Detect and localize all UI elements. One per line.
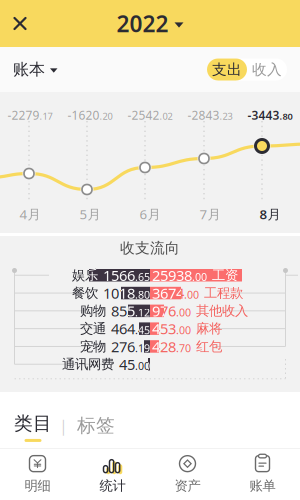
staticText: 1018 [103,283,135,303]
staticText: 支出 [212,60,242,78]
staticText: 宠物 [80,338,106,355]
staticText: .00 [192,270,207,284]
staticText: 428 [152,337,176,356]
staticText: .80 [135,287,150,302]
staticText: .00 [176,305,191,319]
staticText: 3674 [152,283,184,303]
staticText: -1620 [67,107,99,123]
staticText: .00 [184,287,199,302]
staticText: .19 [135,341,150,355]
staticText: 276 [111,337,135,356]
staticText: 类目 [14,412,52,435]
staticText: 855 [111,301,135,321]
staticText: 464 [111,319,135,338]
staticText: 交通 [80,320,106,337]
staticText: -2542 [127,107,159,123]
staticText: .00 [184,287,199,302]
button[interactable]: 标签 [68,415,124,438]
staticText: 其他收入 [196,303,248,319]
staticText: 2022 [116,8,168,38]
staticText: .00 [176,323,191,337]
staticText: .17 [39,110,52,122]
staticText: 收支流向 [120,239,180,257]
staticText: .12 [135,305,150,319]
button[interactable]: 明细 [0,455,75,494]
staticText: 4月 [19,205,40,223]
staticText: -3443 [247,107,279,123]
staticText: 25938 [152,265,192,285]
staticText: 餐饮 [72,285,98,301]
button[interactable]: 支出 [207,58,247,80]
staticText: .70 [176,341,191,355]
button[interactable]: 账本 [0,51,70,88]
staticText: 276 [111,337,135,356]
staticText: 3674 [152,283,184,303]
staticText: 工资 [212,267,238,283]
staticText: 45 [119,354,135,374]
staticText: 娱乐 [72,267,98,283]
staticText: 购物 [80,303,106,319]
staticText: 通讯网费 [62,356,114,372]
staticText: 工资 [212,267,238,283]
staticText: 8月 [259,205,280,223]
staticText: 25938 [152,265,192,285]
staticText: 5月 [79,205,100,223]
staticText: 收入 [252,60,282,78]
staticText: .80 [135,287,150,302]
staticText: 428 [152,337,176,356]
button[interactable]: 统计 [75,455,150,494]
staticText: 976 [152,301,176,321]
staticText: .80 [279,110,292,122]
button[interactable]: 2022 [108,1,191,45]
staticText: 工程款 [204,285,243,301]
staticText: 453 [152,319,176,338]
button[interactable]: 关闭 [0,1,40,45]
staticText: .00 [135,359,150,373]
button[interactable]: 账单 [225,455,300,494]
staticText: 宠物 [80,338,106,355]
staticText: 其他收入 [196,303,248,319]
staticText: 明细 [24,478,50,494]
staticText: 账本 [13,60,45,79]
staticText: .00 [135,359,150,373]
button[interactable]: 资产 [150,455,225,494]
staticText: 账单 [249,478,275,494]
staticText: 统计 [99,478,125,494]
staticText: .45 [135,323,150,337]
staticText: 娱乐 [72,267,98,283]
staticText: 标签 [77,414,115,437]
staticText: .20 [99,110,112,122]
staticText: 464 [111,319,135,338]
staticText: .00 [192,270,207,284]
staticText: 45 [119,354,135,374]
staticText: 红包 [196,338,222,355]
staticText: 餐饮 [72,285,98,301]
staticText: 通讯网费 [62,356,114,372]
staticText: 1566 [103,265,135,285]
staticText: .19 [135,341,150,355]
staticText: 资产 [174,478,200,494]
staticText: 1018 [103,283,135,303]
staticText: .45 [135,323,150,337]
staticText: .12 [135,305,150,319]
staticText: .00 [176,305,191,319]
staticText: 购物 [80,303,106,319]
staticText: 976 [152,301,176,321]
staticText: .23 [219,110,232,122]
staticText: 麻将 [196,320,222,337]
staticText: 855 [111,301,135,321]
staticText: .02 [159,110,172,122]
button[interactable]: 类目 [0,412,59,442]
button[interactable]: 收入 [247,58,287,80]
staticText: | [59,415,68,436]
staticText: 453 [152,319,176,338]
staticText: 6月 [139,205,160,223]
staticText: 麻将 [196,320,222,337]
staticText: 工程款 [204,285,243,301]
staticText: 1566 [103,265,135,285]
staticText: 交通 [80,320,106,337]
staticText: .65 [135,270,150,284]
staticText: .00 [176,323,191,337]
staticText: .70 [176,341,191,355]
staticText: -2843 [187,107,219,123]
